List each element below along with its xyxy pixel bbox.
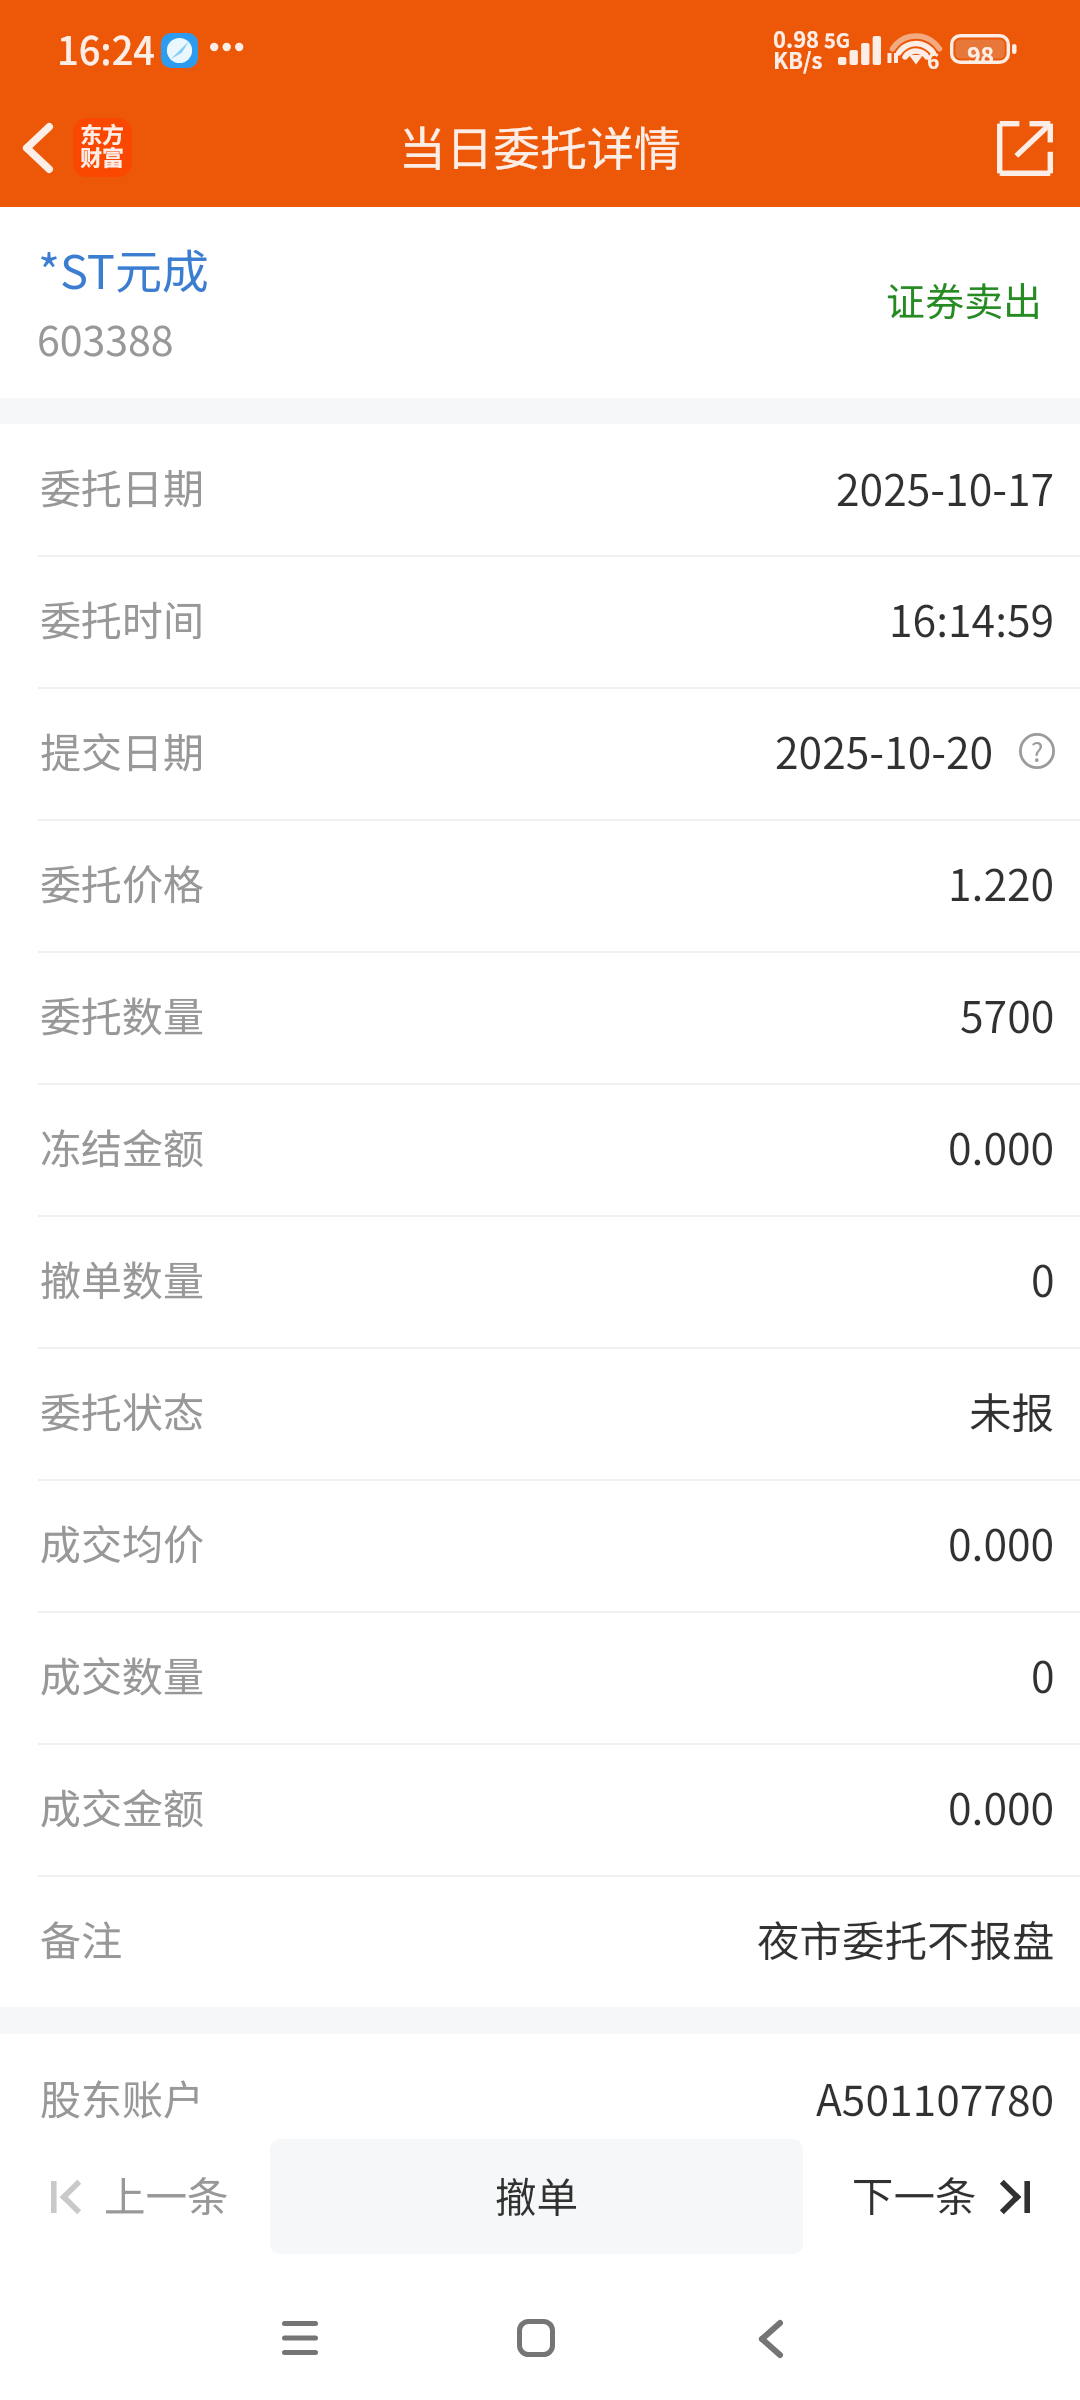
staticText: 冻结金额 bbox=[40, 1116, 204, 1175]
staticText: 5G bbox=[824, 25, 851, 54]
staticText: 东方 bbox=[80, 118, 125, 149]
staticText: 16:24 bbox=[57, 21, 155, 76]
button[interactable]: 委托价格 bbox=[0, 819, 1080, 951]
staticText: 5700 bbox=[960, 984, 1055, 1046]
staticText: 603388 bbox=[37, 308, 174, 367]
button[interactable]: 成交均价 bbox=[0, 1479, 1080, 1611]
staticText: 委托数量 bbox=[40, 984, 204, 1043]
staticText: 成交数量 bbox=[40, 1644, 204, 1703]
staticText: 成交均价 bbox=[40, 1512, 204, 1571]
staticText: 6 bbox=[927, 45, 940, 75]
button[interactable]: 上一条 bbox=[0, 2139, 270, 2254]
button[interactable]: Recent apps bbox=[250, 2297, 350, 2379]
button[interactable]: 委托数量 bbox=[0, 951, 1080, 1083]
button[interactable]: 冻结金额 bbox=[0, 1083, 1080, 1215]
staticText: 2025-10-17 bbox=[836, 457, 1055, 519]
staticText: 财富 bbox=[80, 140, 125, 172]
staticText: 委托状态 bbox=[40, 1380, 204, 1439]
staticText: 1.220 bbox=[948, 852, 1055, 914]
staticText: ? bbox=[1031, 732, 1044, 768]
staticText: 撤单数量 bbox=[40, 1248, 204, 1307]
staticText: 98 bbox=[967, 37, 995, 67]
staticText: 上一条 bbox=[104, 2164, 229, 2224]
staticText: 撤单 bbox=[495, 2165, 579, 2225]
button[interactable]: 撤单数量 bbox=[0, 1215, 1080, 1347]
staticText: 0.000 bbox=[948, 1116, 1055, 1178]
staticText: 下一条 bbox=[852, 2164, 977, 2224]
button[interactable]: Back bbox=[0, 100, 76, 196]
button[interactable]: 股东账户 bbox=[0, 2034, 1080, 2166]
button[interactable]: 成交金额 bbox=[0, 1743, 1080, 1875]
staticText: 提交日期 bbox=[40, 720, 204, 779]
staticText: 成交金额 bbox=[40, 1776, 204, 1835]
button[interactable]: 委托时间 bbox=[0, 555, 1080, 687]
button[interactable]: 提交日期 bbox=[0, 687, 1080, 819]
staticText: 夜市委托不报盘 bbox=[757, 1908, 1055, 1970]
staticText: 0 bbox=[1031, 1644, 1055, 1706]
button[interactable]: Home bbox=[488, 2297, 584, 2379]
staticText: *ST元成 bbox=[38, 234, 209, 302]
button[interactable]: 撤单 bbox=[270, 2139, 803, 2254]
staticText: 当日委托详情 bbox=[399, 111, 681, 179]
staticText: 备注 bbox=[40, 1908, 122, 1967]
button[interactable]: 成交数量 bbox=[0, 1611, 1080, 1743]
staticText: KB/s bbox=[773, 43, 823, 75]
button[interactable]: 委托状态 bbox=[0, 1347, 1080, 1479]
button[interactable]: Share bbox=[978, 101, 1072, 195]
staticText: 0.000 bbox=[948, 1776, 1055, 1838]
staticText: 股东账户 bbox=[40, 2067, 204, 2126]
button[interactable]: 备注 bbox=[0, 1875, 1080, 2007]
staticText: A501107780 bbox=[816, 2067, 1055, 2129]
staticText: 未报 bbox=[969, 1380, 1055, 1442]
button[interactable]: Back bbox=[723, 2298, 819, 2380]
button[interactable]: 下一条 bbox=[803, 2139, 1080, 2254]
staticText: 0.000 bbox=[948, 1512, 1055, 1574]
staticText: 委托价格 bbox=[40, 852, 204, 911]
staticText: 证券卖出 bbox=[886, 271, 1043, 327]
staticText: 委托时间 bbox=[40, 588, 204, 647]
staticText: 委托日期 bbox=[40, 456, 204, 515]
staticText: 16:14:59 bbox=[889, 588, 1055, 650]
staticText: 0 bbox=[1031, 1248, 1055, 1310]
button[interactable]: 委托日期 bbox=[0, 424, 1080, 555]
staticText: 2025-10-20 bbox=[775, 720, 994, 782]
staticText: 0.98 bbox=[773, 22, 820, 54]
